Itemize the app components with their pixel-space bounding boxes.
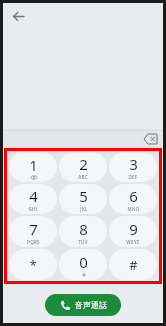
- button[interactable]: 8: [59, 216, 107, 247]
- button[interactable]: 3: [109, 152, 157, 182]
- button[interactable]: 音声通話: [45, 294, 121, 316]
- button[interactable]: 9: [109, 216, 157, 247]
- staticText: JKL: [80, 206, 88, 212]
- staticText: *: [29, 256, 37, 274]
- button[interactable]: 6: [109, 184, 157, 214]
- staticText: TUV: [78, 239, 88, 245]
- staticText: 8: [79, 219, 88, 239]
- staticText: WXYZ: [126, 239, 140, 245]
- button[interactable]: 5: [59, 184, 107, 214]
- button[interactable]: Backspace: [142, 131, 158, 147]
- staticText: PQRS: [27, 239, 40, 245]
- staticText: 1: [29, 155, 38, 175]
- staticText: 7: [29, 219, 38, 239]
- staticText: 5: [79, 186, 88, 206]
- staticText: 2: [79, 154, 88, 174]
- staticText: 音声通話: [75, 300, 107, 310]
- button[interactable]: 4: [9, 184, 57, 214]
- staticText: GHI: [28, 206, 38, 212]
- button[interactable]: *: [9, 249, 57, 280]
- button[interactable]: Back: [7, 5, 29, 27]
- button[interactable]: 1: [9, 152, 57, 182]
- staticText: 9: [129, 219, 138, 239]
- button[interactable]: 0: [59, 249, 107, 280]
- staticText: 3: [129, 154, 138, 174]
- staticText: #: [129, 256, 138, 274]
- button[interactable]: 7: [9, 216, 57, 247]
- button[interactable]: #: [109, 249, 157, 280]
- staticText: ABC: [78, 174, 88, 180]
- staticText: MNO: [127, 206, 140, 212]
- staticText: 6: [129, 186, 138, 206]
- staticText: 0: [79, 252, 88, 272]
- staticText: 4: [29, 186, 38, 206]
- staticText: DEF: [128, 174, 138, 180]
- button[interactable]: 2: [59, 152, 107, 182]
